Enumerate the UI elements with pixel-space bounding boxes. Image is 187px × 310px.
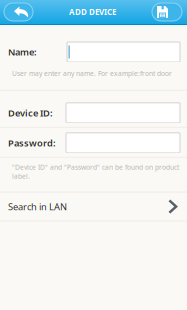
staticText: label. (12, 172, 30, 181)
button[interactable]: Save (152, 3, 182, 21)
staticText: Search in LAN (8, 200, 67, 213)
staticText: Device ID: (8, 107, 53, 119)
button[interactable]: Back (4, 3, 33, 21)
staticText: "Device ID" and "Password" can be found … (12, 163, 179, 172)
staticText: User may enter any name. For example:fro… (12, 69, 172, 78)
staticText: Name: (8, 46, 37, 58)
staticText: Password: (8, 137, 56, 149)
button[interactable]: Search in LAN (0, 193, 187, 221)
staticText: ADD DEVICE (69, 7, 116, 17)
